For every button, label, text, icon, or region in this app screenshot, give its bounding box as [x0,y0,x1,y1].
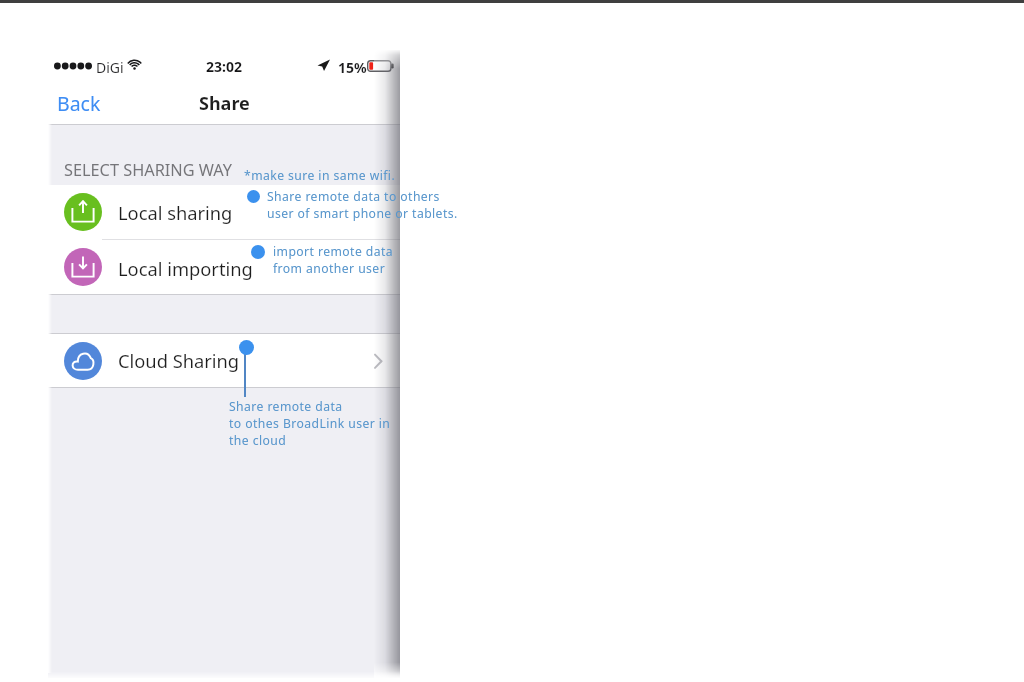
staticText: Share remote data [229,398,343,415]
staticText: the cloud [229,432,287,449]
other: Share locally [64,193,102,231]
staticText: SELECT SHARING WAY [64,159,232,181]
staticText: Cloud Sharing [118,348,240,373]
other: Cloud [64,342,102,380]
staticText: Local importing [118,256,253,281]
staticText: Share [199,91,250,116]
staticText: Share remote data to others [267,188,440,205]
button[interactable]: Back [54,87,104,120]
staticText: DiGi [96,58,124,77]
other: Location in use [317,59,330,71]
other: Import locally [64,248,102,286]
button[interactable]: Share locally [48,185,400,239]
staticText: import remote data [273,243,394,260]
button[interactable]: Cloud [48,334,400,388]
staticText: *make sure in same wifi. [244,167,396,184]
staticText: 15% [338,58,367,77]
button[interactable]: Import locally [48,240,400,294]
other: Wi-Fi [127,58,142,71]
staticText: from another user [273,260,386,277]
staticText: 23:02 [206,57,242,76]
staticText: to othes BroadLink user in [229,415,391,432]
staticText: Back [57,90,101,117]
other: Battery 15 percent [367,60,394,72]
staticText: user of smart phone or tablets. [267,205,458,222]
staticText: Local sharing [118,200,233,225]
